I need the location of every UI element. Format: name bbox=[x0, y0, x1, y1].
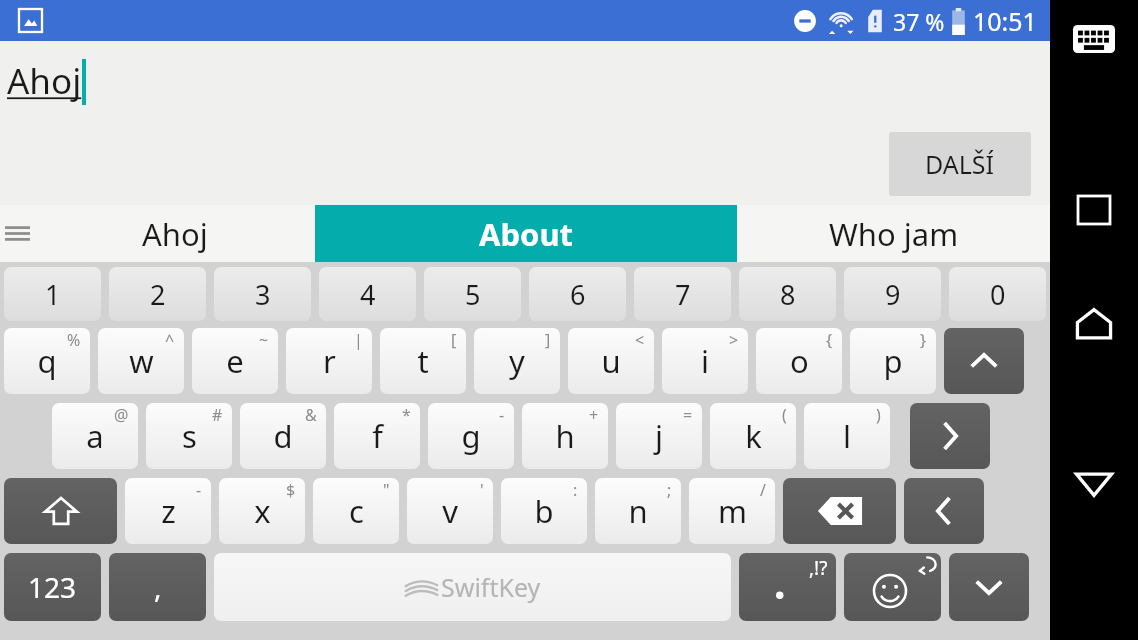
button[interactable]: Recents bbox=[1050, 180, 1138, 240]
button[interactable]: f bbox=[334, 403, 420, 469]
staticText: 7 bbox=[675, 276, 691, 313]
staticText: + bbox=[589, 404, 599, 426]
button[interactable]: 8 bbox=[739, 267, 836, 321]
button[interactable]: y bbox=[474, 328, 560, 394]
button[interactable]: Period bbox=[739, 553, 836, 621]
button[interactable]: Space bbox=[214, 553, 731, 621]
staticText: q bbox=[37, 340, 57, 382]
staticText: Ahoj bbox=[142, 213, 208, 255]
staticText: k bbox=[745, 415, 762, 457]
staticText: z bbox=[161, 490, 176, 532]
button[interactable]: m bbox=[689, 478, 775, 544]
button[interactable]: w bbox=[98, 328, 184, 394]
staticText: 10:51 bbox=[973, 4, 1037, 38]
button[interactable]: e bbox=[192, 328, 278, 394]
staticText: n bbox=[628, 490, 648, 532]
button[interactable]: l bbox=[804, 403, 890, 469]
button[interactable]: b bbox=[501, 478, 587, 544]
button[interactable]: Home bbox=[1050, 292, 1138, 356]
button[interactable]: 9 bbox=[844, 267, 941, 321]
button[interactable]: t bbox=[380, 328, 466, 394]
staticText: / bbox=[760, 479, 766, 501]
staticText: y bbox=[509, 340, 525, 382]
button[interactable]: About bbox=[315, 205, 737, 262]
button[interactable]: Ahoj bbox=[34, 205, 315, 262]
button[interactable]: 0 bbox=[949, 267, 1046, 321]
staticText: g bbox=[461, 415, 481, 457]
staticText: # bbox=[212, 404, 223, 426]
button[interactable]: Who jam bbox=[737, 205, 1050, 262]
button[interactable]: h bbox=[522, 403, 608, 469]
button[interactable]: DALŠÍ bbox=[889, 132, 1031, 196]
button[interactable]: 6 bbox=[529, 267, 626, 321]
button[interactable]: p bbox=[850, 328, 936, 394]
staticText: SwiftKey bbox=[441, 570, 541, 604]
button[interactable]: Backspace bbox=[783, 478, 896, 544]
button[interactable]: Move up bbox=[944, 328, 1024, 394]
staticText: * bbox=[402, 404, 411, 426]
staticText: : bbox=[573, 479, 578, 501]
staticText: ' bbox=[480, 479, 484, 501]
staticText: { bbox=[826, 329, 833, 351]
button[interactable]: k bbox=[710, 403, 796, 469]
staticText: Who jam bbox=[829, 213, 959, 255]
button[interactable]: Switch keyboard bbox=[1050, 14, 1138, 64]
button[interactable]: u bbox=[568, 328, 654, 394]
button[interactable]: Emoji bbox=[844, 553, 941, 621]
button[interactable]: 3 bbox=[214, 267, 311, 321]
button[interactable]: d bbox=[240, 403, 326, 469]
button[interactable]: 2 bbox=[109, 267, 206, 321]
staticText: 9 bbox=[885, 276, 901, 313]
button[interactable]: Move down bbox=[949, 553, 1029, 621]
staticText: 0 bbox=[990, 276, 1006, 313]
staticText: 123 bbox=[28, 568, 77, 606]
staticText: } bbox=[920, 329, 927, 351]
staticText: | bbox=[354, 329, 363, 351]
button[interactable]: a bbox=[52, 403, 138, 469]
other: Screenshot notification bbox=[19, 9, 42, 32]
button[interactable]: c bbox=[313, 478, 399, 544]
staticText: @ bbox=[114, 404, 129, 426]
button[interactable]: x bbox=[219, 478, 305, 544]
button[interactable]: i bbox=[662, 328, 748, 394]
button[interactable]: Numbers bbox=[4, 553, 101, 621]
button[interactable]: 1 bbox=[4, 267, 101, 321]
button[interactable]: Hide keyboard bbox=[1050, 452, 1138, 516]
staticText: s bbox=[182, 415, 197, 457]
staticText: o bbox=[790, 340, 809, 382]
button[interactable]: Move right bbox=[910, 403, 990, 469]
staticText: b bbox=[534, 490, 554, 532]
staticText: ~ bbox=[259, 329, 269, 351]
staticText: p bbox=[883, 340, 903, 382]
staticText: ; bbox=[667, 479, 672, 501]
button[interactable]: Menu bbox=[0, 205, 34, 262]
button[interactable]: o bbox=[756, 328, 842, 394]
staticText: i bbox=[701, 340, 709, 382]
staticText: m bbox=[718, 490, 747, 532]
staticText: - bbox=[499, 404, 505, 426]
button[interactable]: 7 bbox=[634, 267, 731, 321]
staticText: DALŠÍ bbox=[925, 147, 995, 181]
button[interactable]: v bbox=[407, 478, 493, 544]
staticText: a bbox=[86, 415, 104, 457]
button[interactable]: Shift bbox=[4, 478, 117, 544]
staticText: e bbox=[226, 340, 244, 382]
button[interactable]: g bbox=[428, 403, 514, 469]
staticText: ^ bbox=[165, 329, 175, 351]
button[interactable]: j bbox=[616, 403, 702, 469]
button[interactable]: 5 bbox=[424, 267, 521, 321]
button[interactable]: Move left bbox=[904, 478, 984, 544]
staticText: [ bbox=[451, 329, 457, 351]
staticText: ,!? bbox=[809, 555, 828, 581]
button[interactable]: r bbox=[286, 328, 372, 394]
button[interactable]: q bbox=[4, 328, 90, 394]
button[interactable]: s bbox=[146, 403, 232, 469]
staticText: ) bbox=[876, 404, 881, 426]
staticText: f bbox=[372, 415, 383, 457]
button[interactable]: n bbox=[595, 478, 681, 544]
button[interactable]: 4 bbox=[319, 267, 416, 321]
button[interactable]: z bbox=[125, 478, 211, 544]
staticText: < bbox=[635, 329, 645, 351]
staticText: % bbox=[67, 329, 81, 351]
button[interactable]: Comma bbox=[109, 553, 206, 621]
